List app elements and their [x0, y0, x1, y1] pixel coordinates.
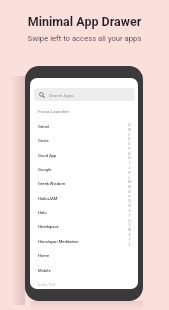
- staticText: HaikuJAM: [38, 196, 58, 201]
- staticText: A: [125, 123, 134, 127]
- staticText: Gmail: [38, 124, 49, 129]
- staticText: X: [125, 233, 134, 237]
- staticText: Swipe left to access all your apps: [0, 34, 169, 43]
- staticText: D: [125, 137, 134, 141]
- staticText: Goals: [38, 138, 49, 143]
- staticText: T: [125, 214, 134, 218]
- button[interactable]: HaikuJAM: [30, 191, 138, 205]
- staticText: F: [125, 147, 134, 151]
- button[interactable]: Mobile: [30, 263, 138, 277]
- staticText: Y: [125, 238, 134, 242]
- staticText: Halo: [38, 210, 47, 215]
- staticText: P: [125, 195, 134, 199]
- button[interactable]: Search: [34, 88, 135, 101]
- staticText: K: [125, 171, 134, 175]
- button[interactable]: Halo: [30, 205, 138, 219]
- button[interactable]: Google: [30, 162, 138, 176]
- staticText: S: [125, 209, 134, 213]
- staticText: J: [125, 166, 134, 170]
- staticText: Headspace: [38, 224, 59, 229]
- button[interactable]: Himalayan Meditation: [30, 234, 138, 248]
- staticText: G: [125, 152, 134, 156]
- staticText: W: [125, 228, 134, 232]
- button[interactable]: Gmail: [30, 119, 138, 133]
- staticText: M: [125, 180, 134, 184]
- staticText: U: [125, 219, 134, 223]
- staticText: Minimal App Drawer: [0, 14, 169, 29]
- other: Search: [39, 92, 45, 98]
- button[interactable]: Home: [30, 248, 138, 262]
- staticText: Z: [125, 243, 134, 247]
- staticText: Focus Launcher: [38, 109, 70, 114]
- staticText: N: [125, 185, 134, 189]
- staticText: Home: [38, 253, 50, 258]
- staticText: Himalayan Meditation: [38, 239, 79, 244]
- button[interactable]: India Talk: [30, 277, 138, 289]
- staticText: Google: [38, 167, 52, 172]
- staticText: Q: [125, 199, 134, 203]
- staticText: H: [125, 156, 134, 160]
- staticText: Good App: [38, 153, 57, 158]
- button[interactable]: Goals: [30, 133, 138, 147]
- staticText: B: [125, 128, 134, 132]
- staticText: Greek Wisdom: [38, 181, 65, 186]
- staticText: R: [125, 204, 134, 208]
- button[interactable]: Alphabet index: [125, 123, 134, 251]
- staticText: O: [125, 190, 134, 194]
- staticText: Mobile: [38, 268, 51, 273]
- button[interactable]: Headspace: [30, 219, 138, 233]
- staticText: V: [125, 223, 134, 227]
- staticText: E: [125, 142, 134, 146]
- button[interactable]: Greek Wisdom: [30, 176, 138, 190]
- staticText: Search Apps: [49, 93, 74, 98]
- staticText: I: [125, 161, 134, 165]
- button[interactable]: Good App: [30, 148, 138, 162]
- staticText: L: [125, 176, 134, 180]
- staticText: C: [125, 133, 134, 137]
- staticText: India Talk: [38, 282, 56, 287]
